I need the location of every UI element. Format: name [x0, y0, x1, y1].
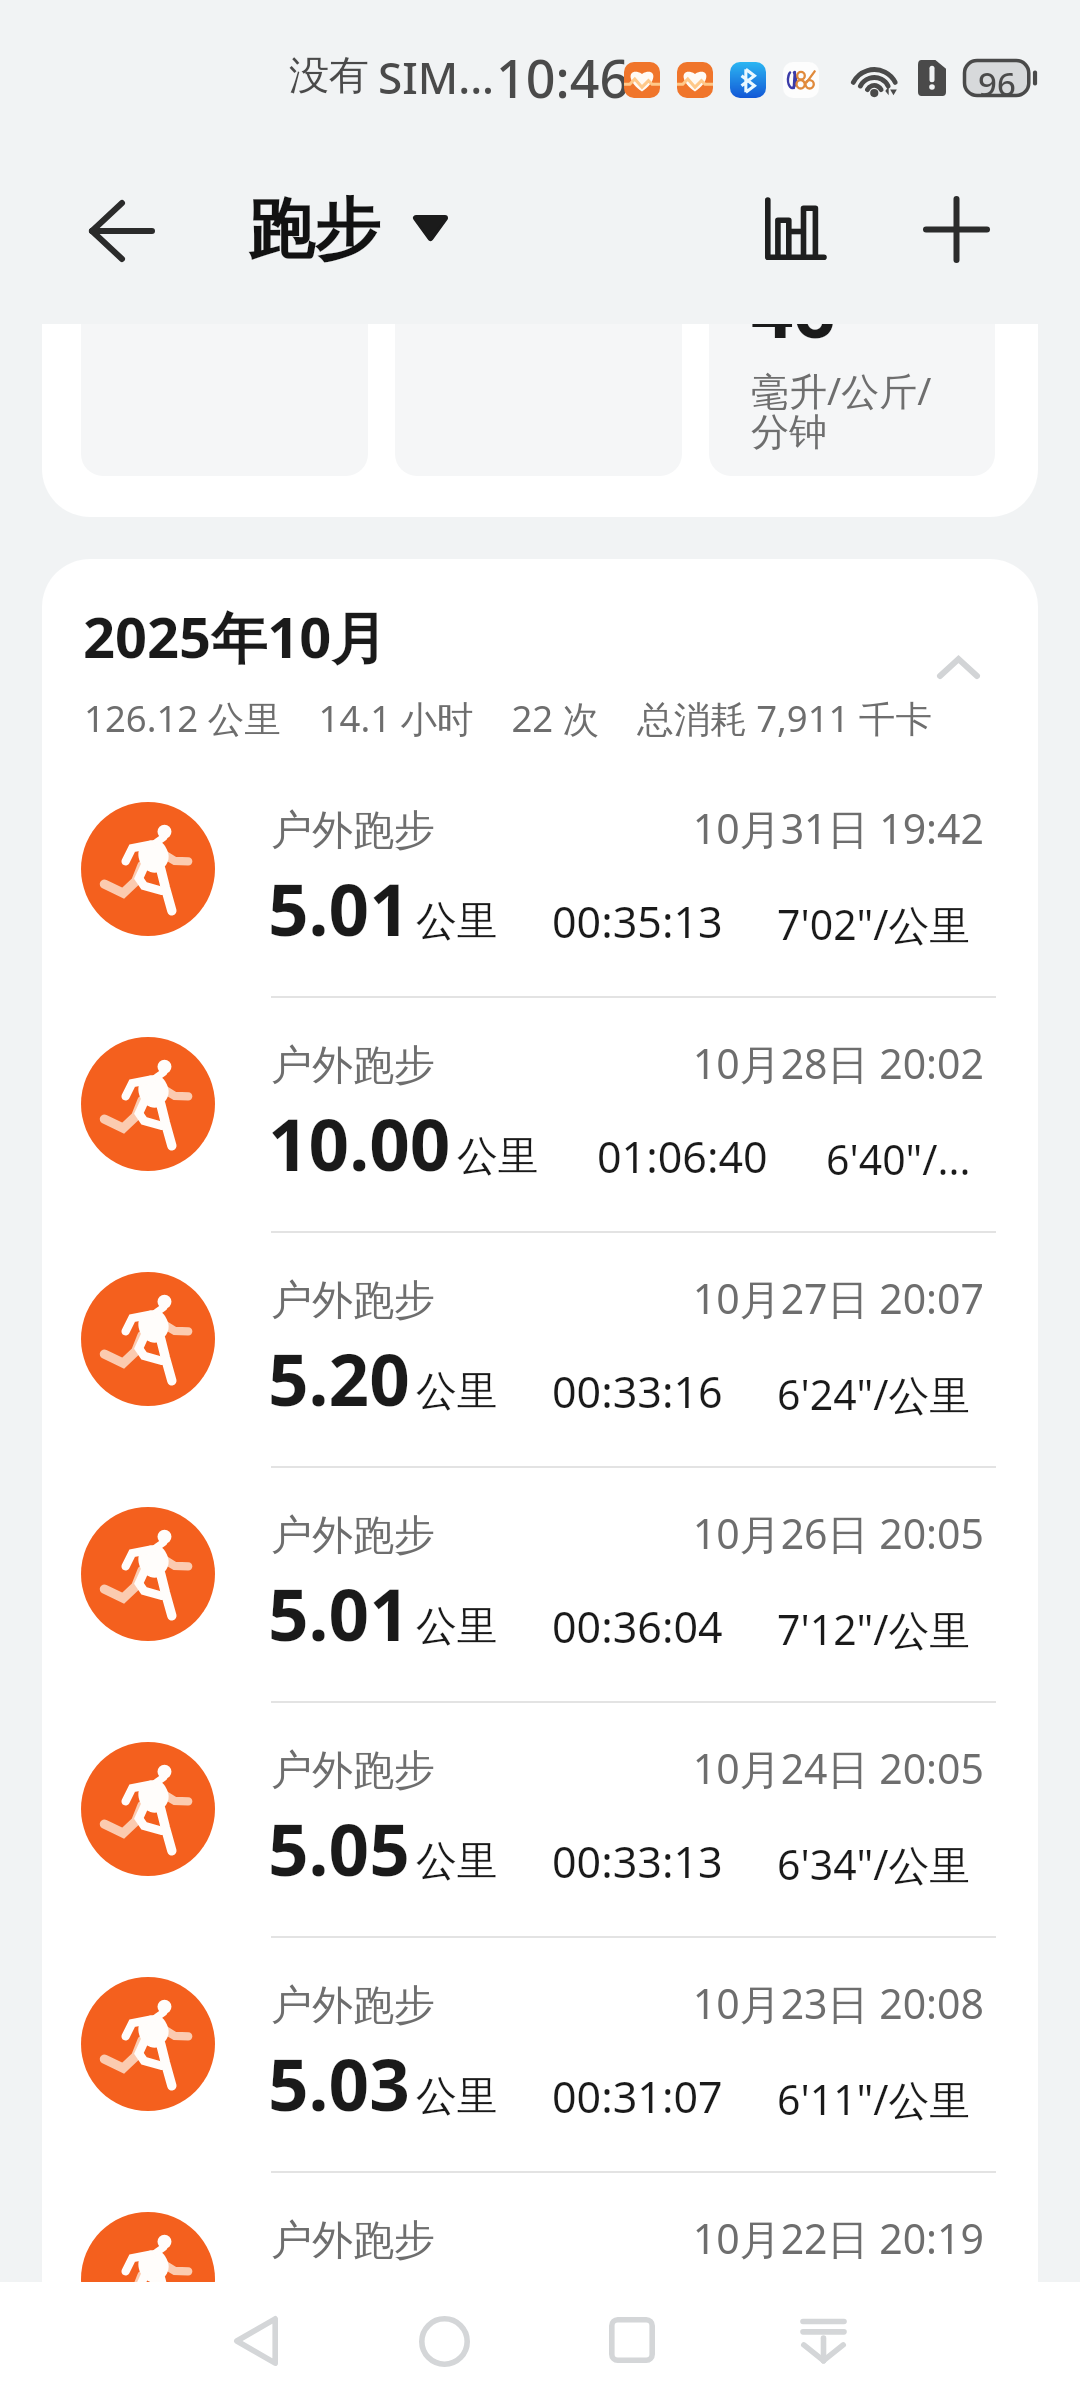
staticText: 公里 — [416, 896, 498, 948]
staticText: 10月31日 19:42 — [512, 800, 984, 856]
button[interactable]: Add — [890, 163, 1023, 296]
staticText: 00:31:07 — [552, 2067, 723, 2126]
button[interactable]: 户外跑步 — [42, 2171, 1038, 2282]
staticText: 126.12 公里 14.1 小时 22 次 总消耗 7,911 千卡 — [84, 693, 932, 743]
button[interactable]: Back — [204, 2289, 308, 2393]
staticText: 户外跑步 — [271, 805, 435, 857]
staticText: 6'11"/公里 — [777, 2071, 971, 2127]
staticText: 户外跑步 — [271, 1980, 435, 2032]
staticText: 2025年10月 — [83, 598, 388, 674]
staticText: 公里 — [416, 1601, 498, 1653]
button[interactable]: 户外跑步 — [42, 1466, 1038, 1701]
staticText: 户外跑步 — [271, 1510, 435, 1562]
staticText: 6'24"/公里 — [777, 1366, 971, 1422]
staticText: 96 — [978, 61, 1016, 99]
staticText: 01:06:40 — [597, 1127, 768, 1186]
staticText: 毫升/公斤/分钟 — [751, 364, 959, 456]
staticText: 10.00 — [268, 1095, 451, 1192]
staticText: 6'34"/公里 — [777, 1836, 971, 1892]
staticText: 7'12"/公里 — [777, 1601, 971, 1657]
staticText: 46 — [751, 324, 836, 360]
button[interactable]: 户外跑步 — [42, 1936, 1038, 2171]
staticText: 00:36:04 — [552, 1597, 723, 1656]
staticText: 公里 — [416, 2071, 498, 2123]
staticText: 10:46 — [496, 42, 630, 113]
button[interactable]: Download — [771, 2287, 875, 2391]
staticText: 户外跑步 — [271, 1745, 435, 1797]
staticText: SIM... — [378, 47, 495, 107]
staticText: 公里 — [416, 1836, 498, 1888]
staticText: 6'40"/... — [826, 1131, 971, 1187]
button[interactable]: 跑步 — [228, 168, 468, 291]
staticText: 跑步 — [248, 188, 380, 271]
staticText: 00:35:13 — [552, 892, 723, 951]
staticText: 5.05 — [268, 1800, 410, 1897]
staticText: 户外跑步 — [271, 1040, 435, 1092]
staticText: 10月28日 20:02 — [512, 1035, 984, 1091]
staticText: 5.03 — [268, 2035, 410, 2132]
staticText: 5.01 — [268, 860, 410, 957]
staticText: 10月24日 20:05 — [512, 1740, 984, 1796]
staticText: 7'02"/公里 — [777, 896, 971, 952]
button[interactable]: 户外跑步 — [42, 1701, 1038, 1936]
button[interactable]: Home — [392, 2289, 496, 2393]
staticText: 10月26日 20:05 — [512, 1505, 984, 1561]
staticText: 00:33:16 — [552, 1362, 723, 1421]
staticText: 5.01 — [268, 1565, 410, 1662]
staticText: 5.20 — [268, 1330, 410, 1427]
button[interactable]: 46 — [709, 324, 995, 476]
button[interactable]: 户外跑步 — [42, 761, 1038, 996]
button[interactable]: 户外跑步 — [42, 996, 1038, 1231]
staticText: 00:33:13 — [552, 1832, 723, 1891]
button[interactable]: Back — [56, 165, 188, 297]
staticText: 10月23日 20:08 — [512, 1975, 984, 2031]
staticText: 户外跑步 — [271, 2215, 435, 2267]
button[interactable]: Recents — [580, 2288, 684, 2392]
button[interactable]: Statistics — [735, 170, 854, 290]
button[interactable]: Collapse — [906, 627, 1010, 707]
staticText: 10月27日 20:07 — [512, 1270, 984, 1326]
button[interactable]: 户外跑步 — [42, 1231, 1038, 1466]
staticText: 10月22日 20:19 — [512, 2210, 984, 2266]
button[interactable]: 46 — [42, 324, 1038, 517]
staticText: 户外跑步 — [271, 1275, 435, 1327]
staticText: 公里 — [457, 1131, 539, 1183]
staticText: 没有 — [289, 50, 369, 100]
staticText: 公里 — [416, 1366, 498, 1418]
